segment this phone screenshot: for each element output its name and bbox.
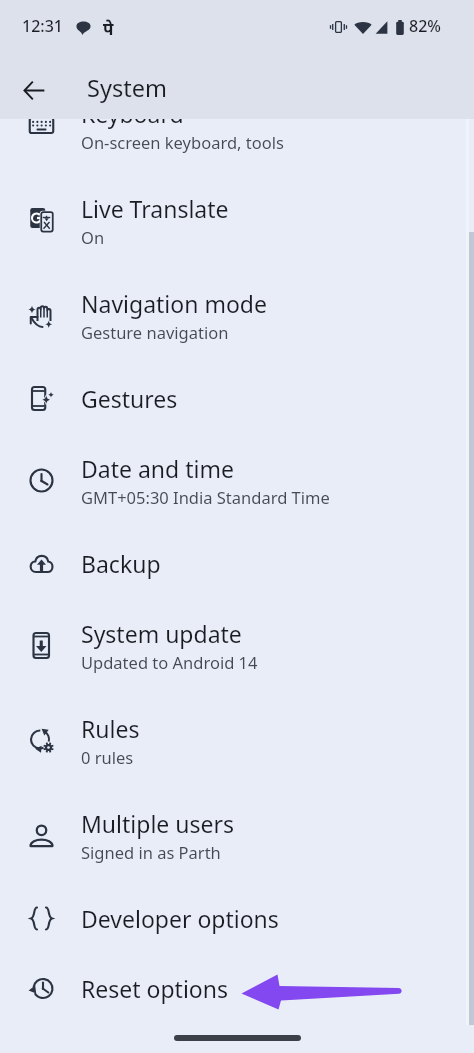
button[interactable]: Live Translate xyxy=(0,173,474,268)
staticText: System xyxy=(87,72,167,104)
staticText: Rules xyxy=(81,713,140,744)
button[interactable]: Rules xyxy=(0,693,474,788)
button[interactable]: System update xyxy=(0,598,474,693)
staticText: Backup xyxy=(81,548,161,579)
staticText: On xyxy=(81,226,105,248)
staticText: System update xyxy=(81,618,242,649)
staticText: Live Translate xyxy=(81,193,229,224)
staticText: पे xyxy=(103,17,114,40)
button[interactable]: Date and time xyxy=(0,433,474,528)
staticText: On-screen keyboard, tools xyxy=(81,131,284,153)
staticText: Signed in as Parth xyxy=(81,841,221,863)
button[interactable]: Gestures xyxy=(0,363,474,433)
staticText: 0 rules xyxy=(81,746,134,768)
staticText: Date and time xyxy=(81,453,234,484)
button[interactable]: Backup xyxy=(0,528,474,598)
staticText: Gesture navigation xyxy=(81,321,229,343)
button[interactable]: Keyboard xyxy=(0,78,474,173)
staticText: Reset options xyxy=(81,973,228,1004)
button[interactable]: Navigation mode xyxy=(0,268,474,363)
staticText: Gestures xyxy=(81,383,178,414)
staticText: Updated to Android 14 xyxy=(81,651,258,673)
staticText: GMT+05:30 India Standard Time xyxy=(81,486,330,508)
staticText: 12:31 xyxy=(22,15,63,37)
staticText: Developer options xyxy=(81,903,279,934)
button[interactable]: Developer options xyxy=(0,883,474,953)
staticText: Keyboard xyxy=(81,98,184,129)
staticText: Multiple users xyxy=(81,808,234,839)
button[interactable]: Back xyxy=(9,66,57,114)
button[interactable]: Multiple users xyxy=(0,788,474,883)
staticText: Navigation mode xyxy=(81,288,267,319)
staticText: 82% xyxy=(409,15,441,37)
button[interactable]: Reset options xyxy=(0,953,474,1023)
